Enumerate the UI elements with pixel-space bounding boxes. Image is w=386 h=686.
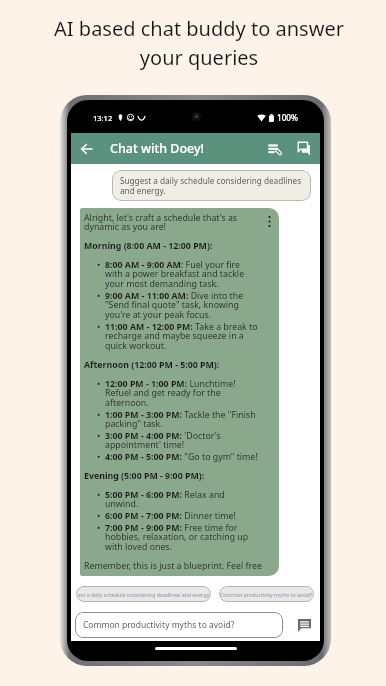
button[interactable]: Common productivity myths to avoid? (219, 586, 314, 602)
staticText: Afternoon (12:00 PM - 5:00 PM): (84, 359, 259, 371)
staticText: • (97, 409, 101, 421)
staticText: 1:00 PM - 3:00 PM: Tackle the "Finish pa… (105, 409, 260, 430)
staticText: 9:00 AM - 11:00 AM: Dive into the "Send … (105, 290, 260, 321)
staticText: • (97, 451, 101, 463)
staticText: 12:00 PM - 1:00 PM: Lunchtime! Refuel an… (105, 378, 260, 409)
staticText: 3:00 PM - 4:00 PM: 'Doctor's appointment… (105, 430, 260, 451)
staticText: 7:00 PM - 9:00 PM: Free time for hobbies… (105, 522, 260, 553)
staticText: • (97, 290, 101, 302)
staticText: 100% (277, 112, 299, 123)
staticText: 5:00 PM - 6:00 PM: Relax and unwind. (105, 489, 260, 510)
button[interactable]: Suggest a daily schedule considering dea… (112, 170, 311, 201)
staticText: Alright, let's craft a schedule that's a… (84, 212, 264, 233)
button[interactable]: Back (76, 139, 96, 159)
staticText: Common productivity myths to avoid? (220, 591, 313, 598)
staticText: • (97, 321, 101, 333)
button[interactable]: Common productivity myths to avoid? (75, 612, 283, 638)
staticText: • (97, 510, 101, 522)
staticText: est a daily schedule considering deadlin… (78, 591, 210, 598)
staticText: • (97, 430, 101, 442)
staticText: Suggest a daily schedule considering dea… (120, 175, 303, 196)
button[interactable]: Edit (265, 138, 286, 159)
button[interactable]: Send message (294, 615, 314, 635)
staticText: 8:00 AM - 9:00 AM: Fuel your fire with a… (105, 259, 260, 290)
staticText: Morning (8:00 AM - 12:00 PM): (84, 240, 259, 252)
staticText: AI based chat buddy to answer your queri… (6, 15, 386, 71)
staticText: • (97, 522, 101, 534)
staticText: 4:00 PM - 5:00 PM: "Go to gym" time! (105, 451, 258, 463)
staticText: Common productivity myths to avoid? (83, 619, 235, 631)
button[interactable]: est a daily schedule considering deadlin… (76, 586, 211, 602)
staticText: Chat with Doey! (110, 140, 205, 157)
staticText: • (97, 378, 101, 390)
button[interactable]: More options (268, 216, 271, 227)
staticText: • (97, 259, 101, 271)
button[interactable]: Alright, let's craft a schedule that's a… (80, 208, 279, 576)
staticText: • (97, 489, 101, 501)
staticText: 6:00 PM - 7:00 PM: Dinner time! (105, 510, 236, 522)
staticText: 11:00 AM - 12:00 PM: Take a break to rec… (105, 321, 260, 352)
button[interactable]: New chat (294, 138, 315, 159)
staticText: Evening (5:00 PM - 9:00 PM): (84, 470, 259, 482)
staticText: Remember, this is just a blueprint. Feel… (84, 560, 264, 572)
staticText: 13:12 (93, 113, 113, 123)
